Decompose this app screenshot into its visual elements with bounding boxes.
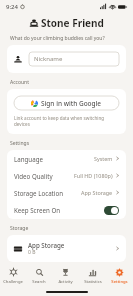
staticText: App Storage [81,189,113,196]
staticText: Storage Location [14,189,64,197]
staticText: Stone Friend [41,16,104,30]
staticText: App Storage [28,241,65,249]
staticText: Settings [111,279,128,285]
button[interactable]: Activity [52,266,79,287]
staticText: Nickname [34,55,63,63]
staticText: Activity [58,279,73,285]
button[interactable]: Settings [106,266,133,287]
button[interactable]: Challenge [0,266,26,287]
button[interactable]: Search [26,266,52,287]
staticText: Statistics [84,279,102,285]
button[interactable]: Video Quality [7,167,126,184]
staticText: Full HD (1080p) [74,172,113,179]
staticText: Storage [10,225,29,232]
button[interactable]: Sign in with Google [14,96,119,110]
button[interactable]: Nickname [7,45,126,73]
staticText: Sign in with Google [41,99,102,108]
other: Keep Screen On toggle [104,206,119,215]
staticText: Settings [10,140,30,147]
staticText: What do your climbing buddies call you? [10,35,105,42]
button[interactable]: Statistics [79,266,106,287]
button[interactable]: Language [7,150,126,167]
staticText: System [94,155,113,162]
button[interactable]: App Storage [7,235,126,262]
staticText: Link account to keep data when switching… [14,115,119,127]
staticText: Challenge [3,279,23,285]
staticText: Account [10,79,30,86]
staticText: Search [32,279,46,285]
staticText: Video Quality [14,172,53,180]
button[interactable]: Storage Location [7,184,126,201]
staticText: 9:24 [6,3,18,11]
staticText: Keep Screen On [14,206,61,214]
button[interactable]: Keep Screen On [7,201,126,219]
staticText: 0 B [28,249,36,256]
staticText: Language [14,155,43,163]
